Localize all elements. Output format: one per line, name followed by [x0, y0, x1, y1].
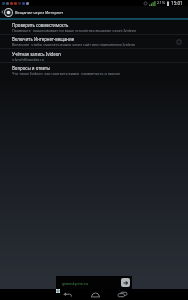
staticText: Вещание через Интернет: [15, 10, 64, 15]
button[interactable]: Toggle broadcast: [174, 37, 183, 46]
button[interactable]: Recent apps: [108, 289, 136, 300]
button[interactable]: Tabs: [56, 289, 60, 293]
staticText: v.lynch@yandex.ru: [12, 57, 45, 61]
staticText: Что такое Ivideon, как смотреть видео, п…: [12, 71, 121, 75]
staticText: Вопросы и ответы: [12, 65, 51, 71]
staticText: Включите, чтобы смотреть видео через сай…: [12, 42, 136, 46]
staticText: 15:01: [171, 0, 183, 6]
staticText: Проверьте, поддерживает ли ваше устройст…: [12, 28, 137, 32]
button[interactable]: Включить Интернет-вещание: [0, 34, 188, 48]
button[interactable]: Back: [53, 289, 81, 300]
staticText: Проверить совместимость: [12, 22, 69, 28]
staticText: grand-prix.ru: [62, 281, 89, 287]
staticText: 21%: [157, 0, 166, 6]
button[interactable]: Вопросы и ответы: [0, 63, 188, 77]
button[interactable]: Back: [0, 6, 4, 18]
staticText: Учётная запись Ivideon: [12, 51, 61, 57]
button[interactable]: Home: [81, 289, 109, 300]
button[interactable]: Go: [121, 278, 130, 287]
button[interactable]: Учётная запись Ivideon: [0, 49, 188, 63]
button[interactable]: Проверить совместимость: [0, 20, 188, 34]
staticText: Включить Интернет-вещание: [12, 36, 75, 42]
button[interactable]: grand-prix.ru: [56, 276, 132, 289]
